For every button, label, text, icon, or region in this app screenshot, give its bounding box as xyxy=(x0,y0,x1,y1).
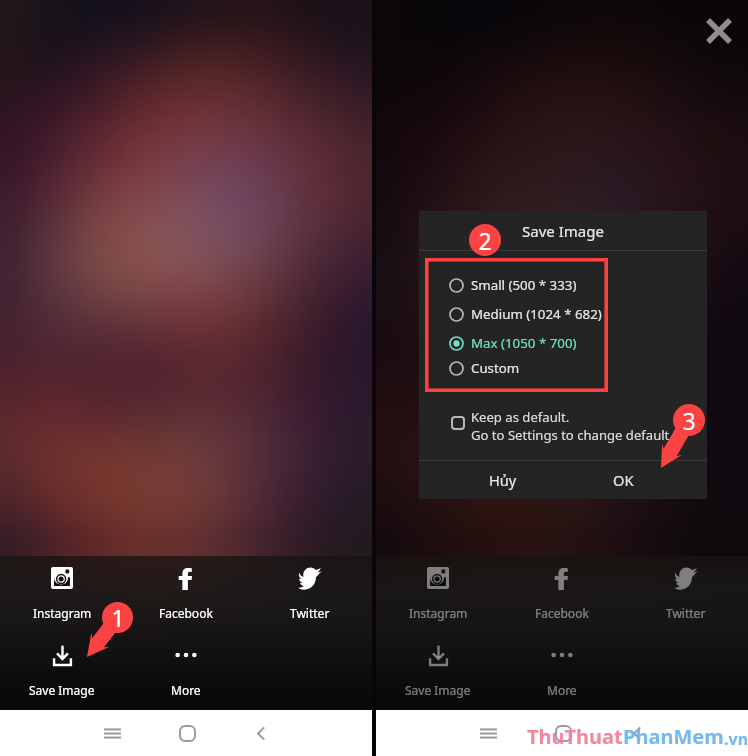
staticText: Instagram xyxy=(409,605,468,621)
staticText: More xyxy=(171,682,201,698)
staticText: Twitter xyxy=(666,605,706,621)
staticText: .vn xyxy=(724,728,748,750)
button[interactable]: Recents xyxy=(451,710,526,756)
button[interactable]: Max (1050 * 700) xyxy=(449,329,707,357)
staticText: ThuThuat xyxy=(527,723,623,750)
button[interactable]: OK xyxy=(563,461,707,499)
staticText: Instagram xyxy=(33,605,92,621)
staticText: 2 xyxy=(478,225,492,256)
staticText: 1 xyxy=(111,602,125,633)
staticText: Save Image xyxy=(405,682,471,698)
staticText: Hủy xyxy=(489,470,517,490)
button[interactable]: Instagram xyxy=(0,556,124,633)
button[interactable]: Recents xyxy=(75,710,150,756)
staticText: Keep as default. xyxy=(471,408,570,426)
staticText: Save Image xyxy=(29,682,95,698)
button[interactable]: Save Image xyxy=(376,633,500,710)
staticText: Twitter xyxy=(290,605,330,621)
staticText: 3 xyxy=(682,405,696,436)
button[interactable]: Medium (1024 * 682) xyxy=(449,300,707,328)
staticText: Facebook xyxy=(535,605,589,621)
button[interactable]: Save Image xyxy=(0,633,124,710)
staticText: Go to Settings to change default. xyxy=(471,426,673,444)
button[interactable]: Close xyxy=(702,14,736,48)
button[interactable]: Facebook xyxy=(124,556,248,633)
button[interactable]: Twitter xyxy=(248,556,372,633)
staticText: More xyxy=(547,682,577,698)
button[interactable]: Home xyxy=(150,710,224,756)
button[interactable]: More xyxy=(500,633,624,710)
staticText: Max (1050 * 700) xyxy=(471,334,577,352)
button[interactable]: Custom xyxy=(449,354,707,382)
staticText: Save Image xyxy=(522,221,604,241)
button[interactable]: Keep as default. xyxy=(451,406,707,451)
button[interactable]: Back xyxy=(224,710,298,756)
staticText: Custom xyxy=(471,359,520,377)
staticText: OK xyxy=(613,470,634,490)
staticText: Small (500 * 333) xyxy=(471,276,577,294)
staticText: PhanMem xyxy=(623,723,724,750)
staticText: Facebook xyxy=(159,605,213,621)
button[interactable]: Small (500 * 333) xyxy=(449,271,707,299)
staticText: Medium (1024 * 682) xyxy=(471,305,602,323)
button[interactable]: Twitter xyxy=(624,556,748,633)
button[interactable]: Back xyxy=(600,710,674,756)
button[interactable]: Home xyxy=(526,710,600,756)
button[interactable]: Instagram xyxy=(376,556,500,633)
button[interactable]: Hủy xyxy=(419,461,563,499)
button[interactable]: More xyxy=(124,633,248,710)
button[interactable]: Facebook xyxy=(500,556,624,633)
